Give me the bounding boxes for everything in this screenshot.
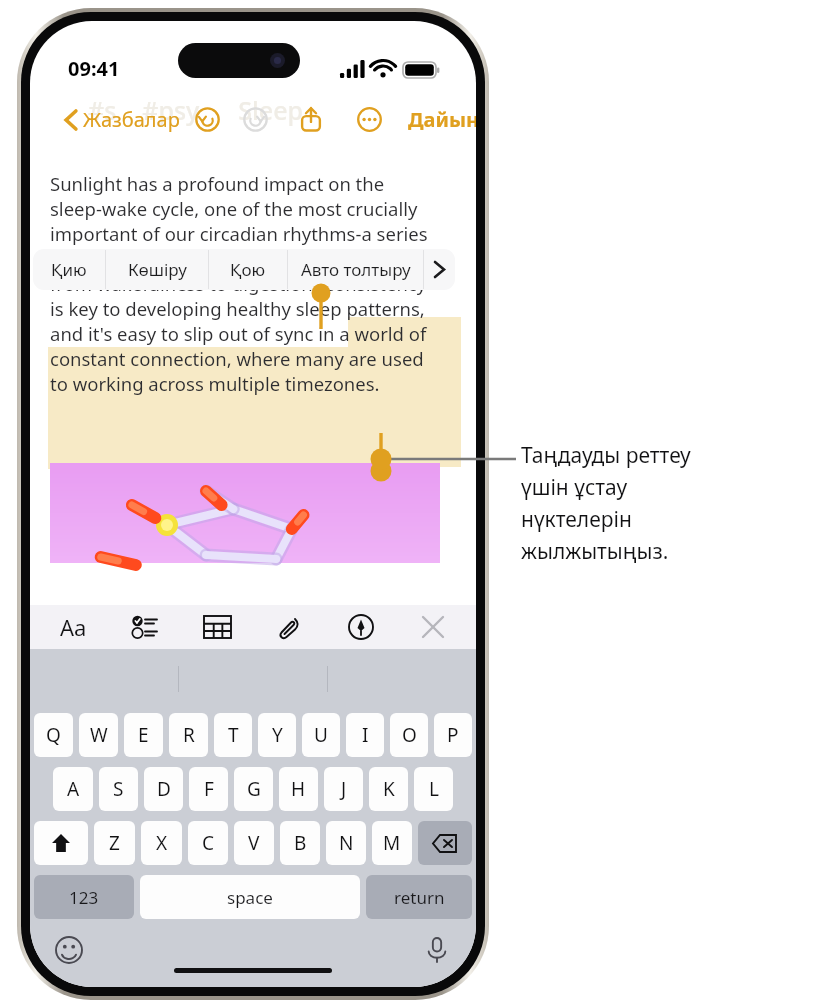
staticText: K xyxy=(383,776,395,802)
button[interactable]: More actions xyxy=(424,249,455,290)
button[interactable]: L xyxy=(414,767,453,811)
button[interactable]: R xyxy=(169,713,208,757)
staticText: is key to developing healthy sleep patte… xyxy=(50,296,425,321)
button[interactable]: Close xyxy=(412,606,454,648)
button[interactable]: Dictation xyxy=(420,933,454,967)
button[interactable]: Дайын xyxy=(406,106,476,133)
button[interactable]: Delete xyxy=(418,821,472,865)
staticText: return xyxy=(394,886,445,909)
staticText: space xyxy=(227,886,273,909)
staticText: B xyxy=(294,830,307,856)
staticText: sleep-wake cycle, one of the most crucia… xyxy=(50,196,418,221)
staticText: 09:41 xyxy=(68,55,120,82)
button[interactable]: Shift xyxy=(34,821,88,865)
button[interactable]: D xyxy=(144,767,183,811)
button[interactable]: P xyxy=(434,713,472,757)
staticText: constant connection, where many are used xyxy=(50,346,424,371)
staticText: Q xyxy=(46,722,61,748)
staticText: X xyxy=(156,830,168,856)
staticText: C xyxy=(202,830,215,856)
button[interactable]: K xyxy=(369,767,408,811)
button[interactable]: F xyxy=(189,767,228,811)
button[interactable]: Жазбалар xyxy=(62,106,182,133)
staticText: U xyxy=(314,722,328,748)
staticText: Aa xyxy=(60,612,87,642)
button[interactable]: Y xyxy=(258,713,296,757)
button[interactable]: M xyxy=(372,821,412,865)
staticText: Дайын xyxy=(408,106,476,133)
staticText: J xyxy=(341,776,347,802)
button[interactable]: Q xyxy=(34,713,73,757)
button[interactable]: Markup xyxy=(340,606,382,648)
staticText: S xyxy=(113,776,124,802)
staticText: W xyxy=(90,722,108,748)
staticText: Z xyxy=(109,830,120,856)
staticText: H xyxy=(291,776,306,802)
button[interactable]: Z xyxy=(94,821,135,865)
staticText: N xyxy=(339,830,354,856)
button[interactable]: Қою xyxy=(209,249,287,290)
button[interactable]: V xyxy=(234,821,274,865)
button[interactable]: Checklist xyxy=(124,606,166,648)
button[interactable]: Undo xyxy=(192,104,222,134)
button[interactable]: return xyxy=(366,875,472,919)
staticText: 123 xyxy=(69,886,99,909)
button[interactable]: 123 xyxy=(34,875,134,919)
staticText: V xyxy=(248,830,260,856)
button[interactable]: Redo xyxy=(240,104,270,134)
staticText: from wakefulness to digestion. Consisten… xyxy=(50,271,427,296)
button[interactable]: J xyxy=(324,767,363,811)
button[interactable]: E xyxy=(124,713,163,757)
staticText: #s #psy Sleep xyxy=(88,93,304,127)
button[interactable]: I xyxy=(346,713,384,757)
button[interactable]: G xyxy=(234,767,273,811)
button[interactable]: W xyxy=(79,713,118,757)
button[interactable]: space xyxy=(140,875,360,919)
button[interactable]: B xyxy=(280,821,320,865)
button[interactable]: N xyxy=(326,821,366,865)
button[interactable]: Table xyxy=(196,606,238,648)
staticText: E xyxy=(138,722,149,748)
staticText: O xyxy=(402,722,417,748)
button[interactable]: Авто толтыру xyxy=(288,249,423,290)
staticText: R xyxy=(183,722,195,748)
staticText: Көшіру xyxy=(128,258,187,281)
button[interactable]: U xyxy=(302,713,340,757)
staticText: Авто толтыру xyxy=(301,258,411,281)
staticText: M xyxy=(383,830,401,856)
button[interactable]: S xyxy=(99,767,138,811)
staticText: F xyxy=(204,776,214,802)
staticText: Қою xyxy=(230,258,266,281)
staticText: Sunlight has a profound impact on the xyxy=(50,171,385,196)
button[interactable]: H xyxy=(279,767,318,811)
staticText: Жазбалар xyxy=(83,106,180,133)
staticText: Таңдауды реттеу үшін ұстау нүктелерін жы… xyxy=(521,441,691,565)
staticText: to working across multiple timezones. xyxy=(50,371,380,396)
staticText: A xyxy=(67,776,80,802)
staticText: D xyxy=(157,776,171,802)
button[interactable]: A xyxy=(53,767,93,811)
staticText: L xyxy=(429,776,439,802)
staticText: G xyxy=(247,776,261,802)
button[interactable]: Emoji xyxy=(52,933,86,967)
staticText: P xyxy=(447,722,459,748)
staticText: bodies' functions to optimize everything xyxy=(50,246,399,271)
button[interactable]: T xyxy=(214,713,252,757)
button[interactable]: Қию xyxy=(33,249,105,290)
button[interactable]: O xyxy=(390,713,428,757)
button[interactable]: Attach xyxy=(268,606,310,648)
button[interactable]: Көшіру xyxy=(106,249,208,290)
staticText: Қию xyxy=(51,258,87,281)
button[interactable]: Share xyxy=(296,104,326,134)
staticText: T xyxy=(228,722,239,748)
button[interactable]: More xyxy=(354,104,384,134)
staticText: important of our circadian rhythms-a ser… xyxy=(50,221,428,246)
staticText: I xyxy=(362,722,369,748)
staticText: and it's easy to slip out of sync in a w… xyxy=(50,321,427,346)
button[interactable]: Text format xyxy=(52,606,94,648)
button[interactable]: X xyxy=(141,821,182,865)
staticText: Y xyxy=(272,722,283,748)
button[interactable]: C xyxy=(188,821,228,865)
